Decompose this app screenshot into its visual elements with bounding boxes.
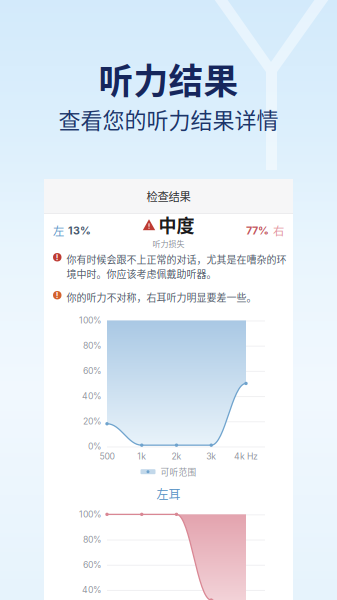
staticText: 80% xyxy=(83,340,102,351)
staticText: 查看您的听力结果详情 xyxy=(58,103,278,135)
staticText: 你的听力不对称，右耳听力明显要差一些。 xyxy=(66,290,256,304)
staticText: 你有时候会跟不上正常的对话，尤其是在嘈杂的环境中时。你应该考虑佩戴助听器。 xyxy=(66,252,286,281)
staticText: 60% xyxy=(83,559,102,570)
staticText: 检查结果 xyxy=(146,188,190,204)
staticText: 2k xyxy=(171,451,181,462)
staticText: 3k xyxy=(206,451,216,462)
staticText: 80% xyxy=(83,534,102,545)
staticText: 听力结果 xyxy=(98,54,238,104)
staticText: 60% xyxy=(83,366,102,376)
staticText: 100% xyxy=(79,315,102,326)
staticText: 40% xyxy=(82,391,102,401)
staticText: 左耳 xyxy=(156,485,180,502)
staticText: 听力损失 xyxy=(152,238,184,249)
staticText: 100% xyxy=(79,509,102,520)
staticText: 左 xyxy=(53,222,64,239)
staticText: 0% xyxy=(88,441,102,452)
staticText: 可听范围 xyxy=(160,465,196,478)
staticText: 中度 xyxy=(158,212,194,238)
staticText: ! xyxy=(56,290,59,300)
staticText: 13% xyxy=(68,224,91,237)
staticText: 40% xyxy=(82,585,102,595)
staticText: 20% xyxy=(83,416,102,426)
staticText: 500 xyxy=(99,451,114,462)
staticText: 右 xyxy=(273,222,284,239)
staticText: 4k Hz xyxy=(234,451,258,462)
staticText: ! xyxy=(56,252,59,262)
staticText: 1k xyxy=(137,451,146,462)
staticText: 77% xyxy=(246,224,269,237)
